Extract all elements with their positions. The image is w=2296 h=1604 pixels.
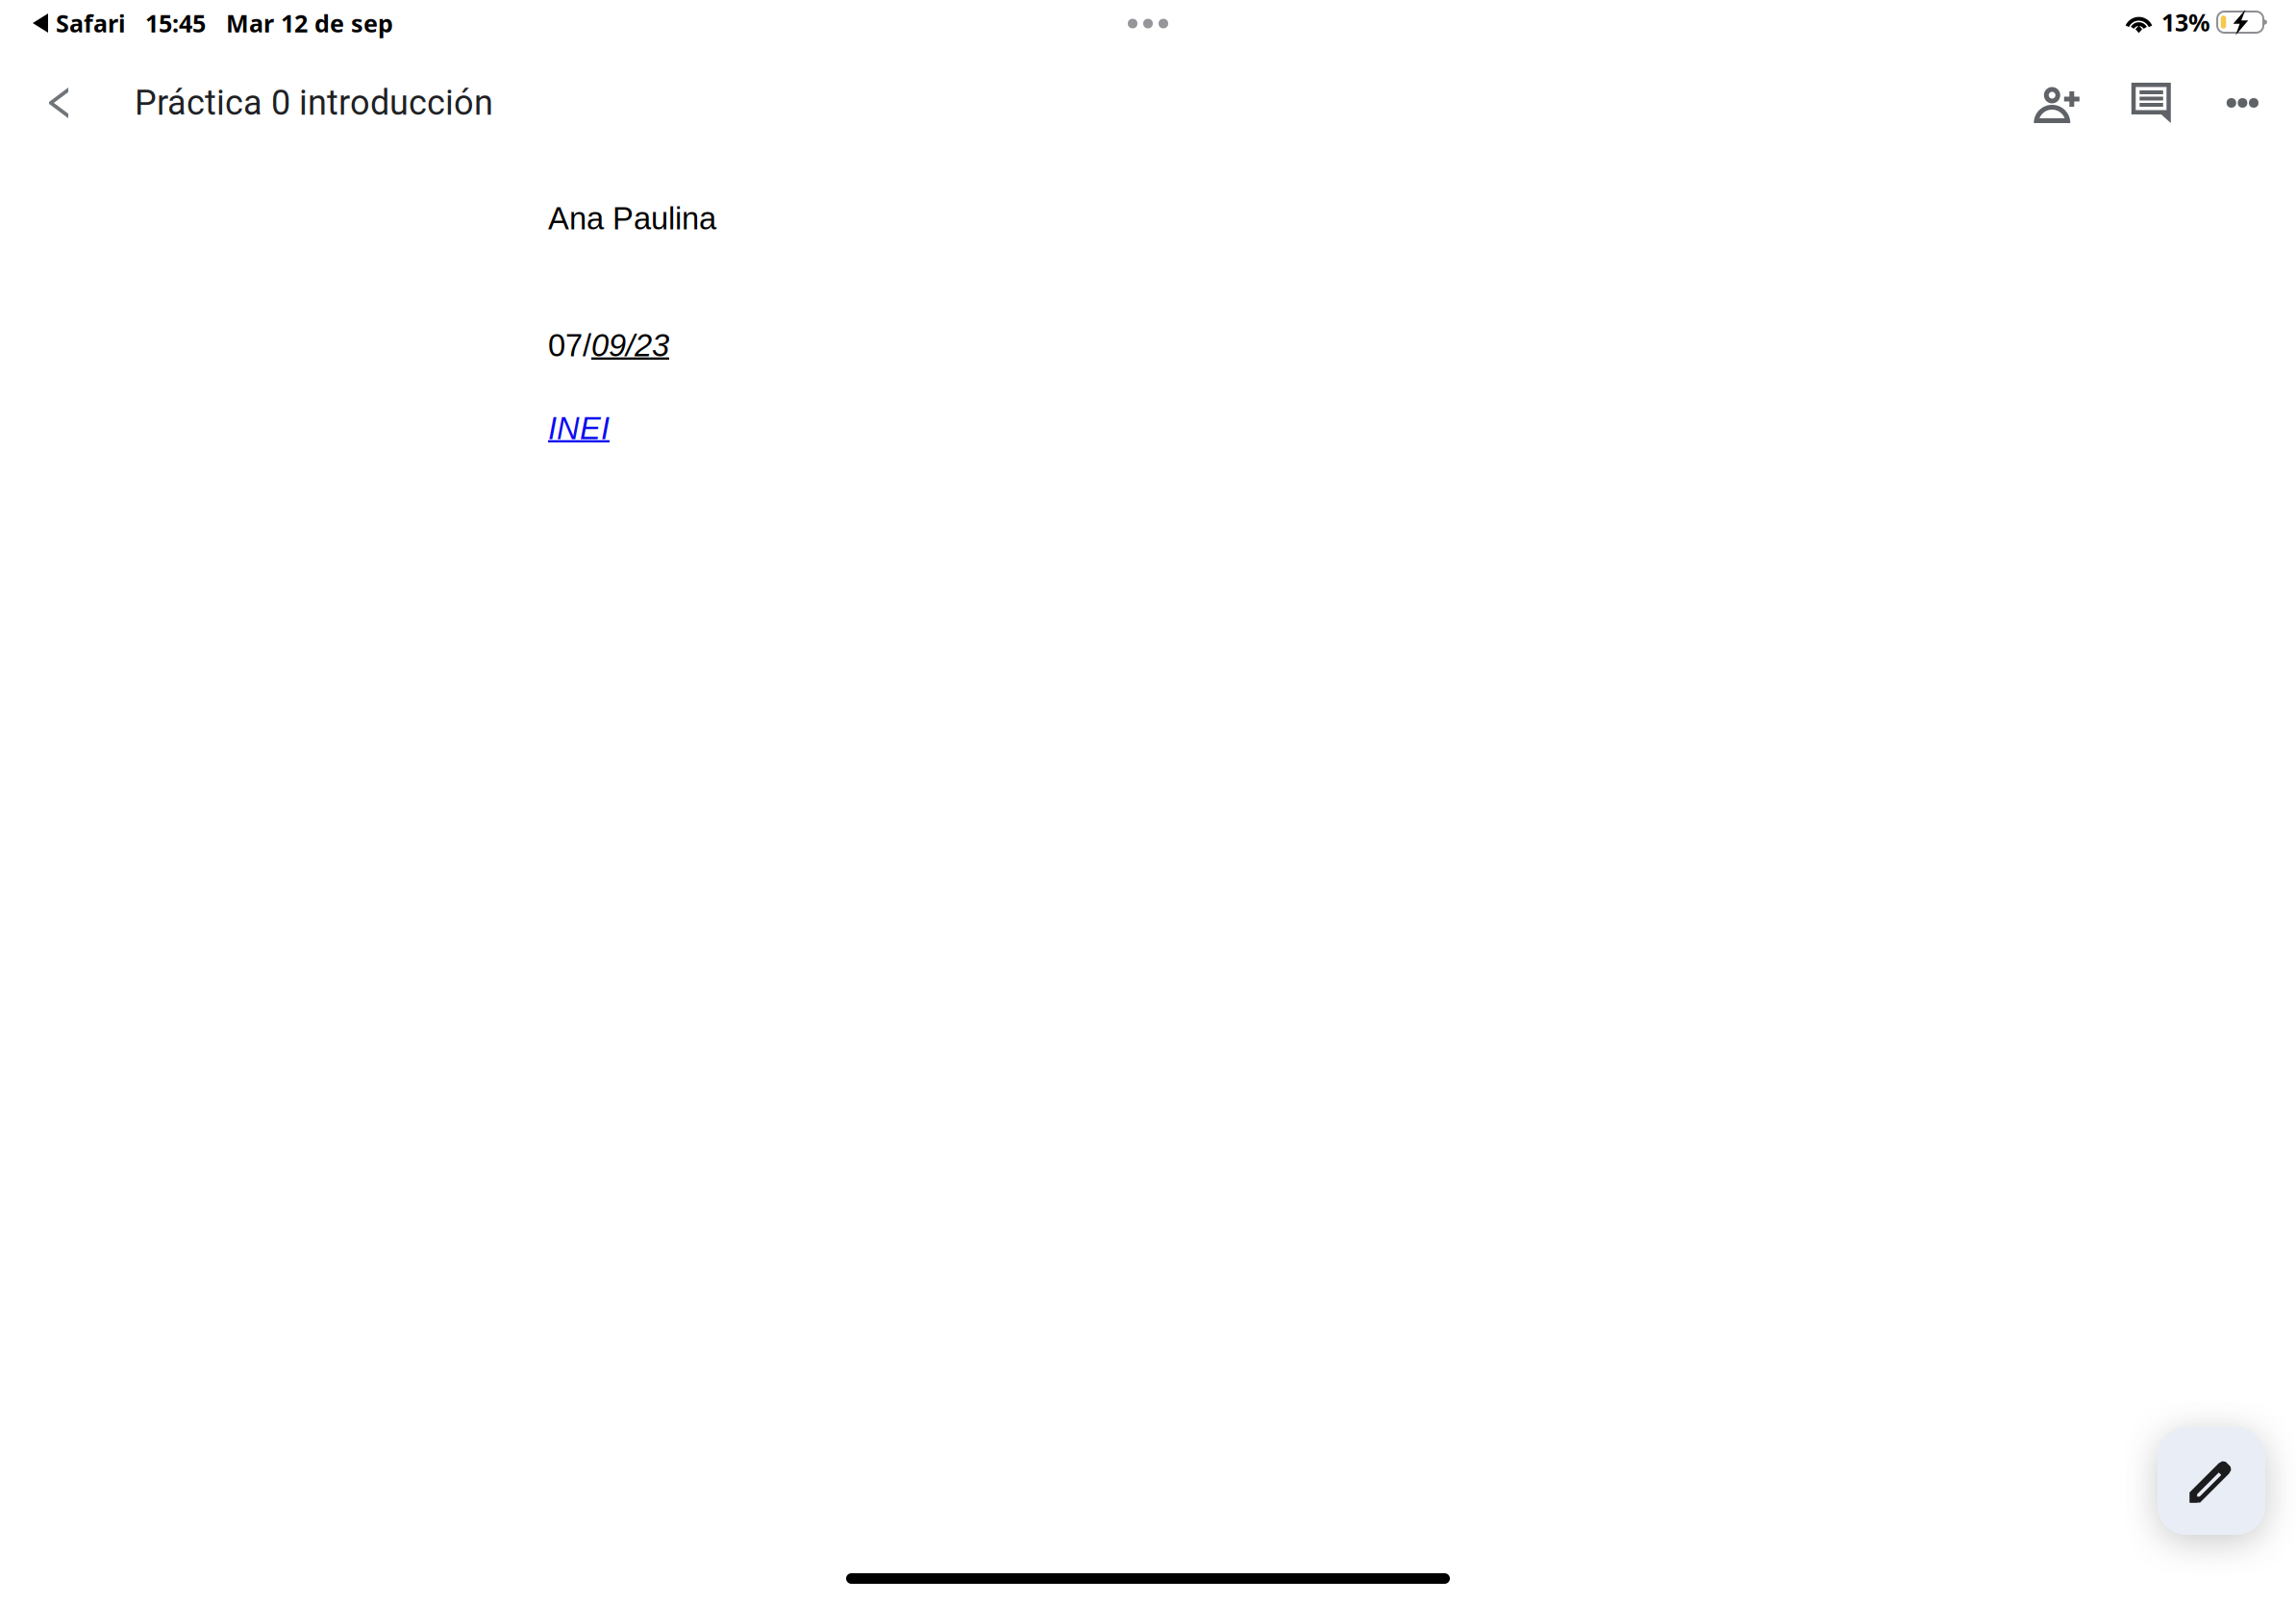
- button[interactable]: Back: [25, 60, 92, 146]
- button[interactable]: Edit: [2158, 1427, 2265, 1535]
- button[interactable]: Share: [2010, 56, 2105, 150]
- staticText: Práctica 0 introducción: [135, 83, 493, 123]
- staticText: Ana Paulina: [548, 201, 716, 236]
- staticText: 13%: [2161, 6, 2210, 38]
- button[interactable]: Comments: [2105, 58, 2197, 148]
- button[interactable]: More options: [2197, 69, 2288, 137]
- staticText: INEI: [548, 411, 610, 446]
- staticText: Safari 15:45 Mar 12 de sep: [49, 7, 393, 39]
- staticText: 07/09/23: [548, 328, 669, 363]
